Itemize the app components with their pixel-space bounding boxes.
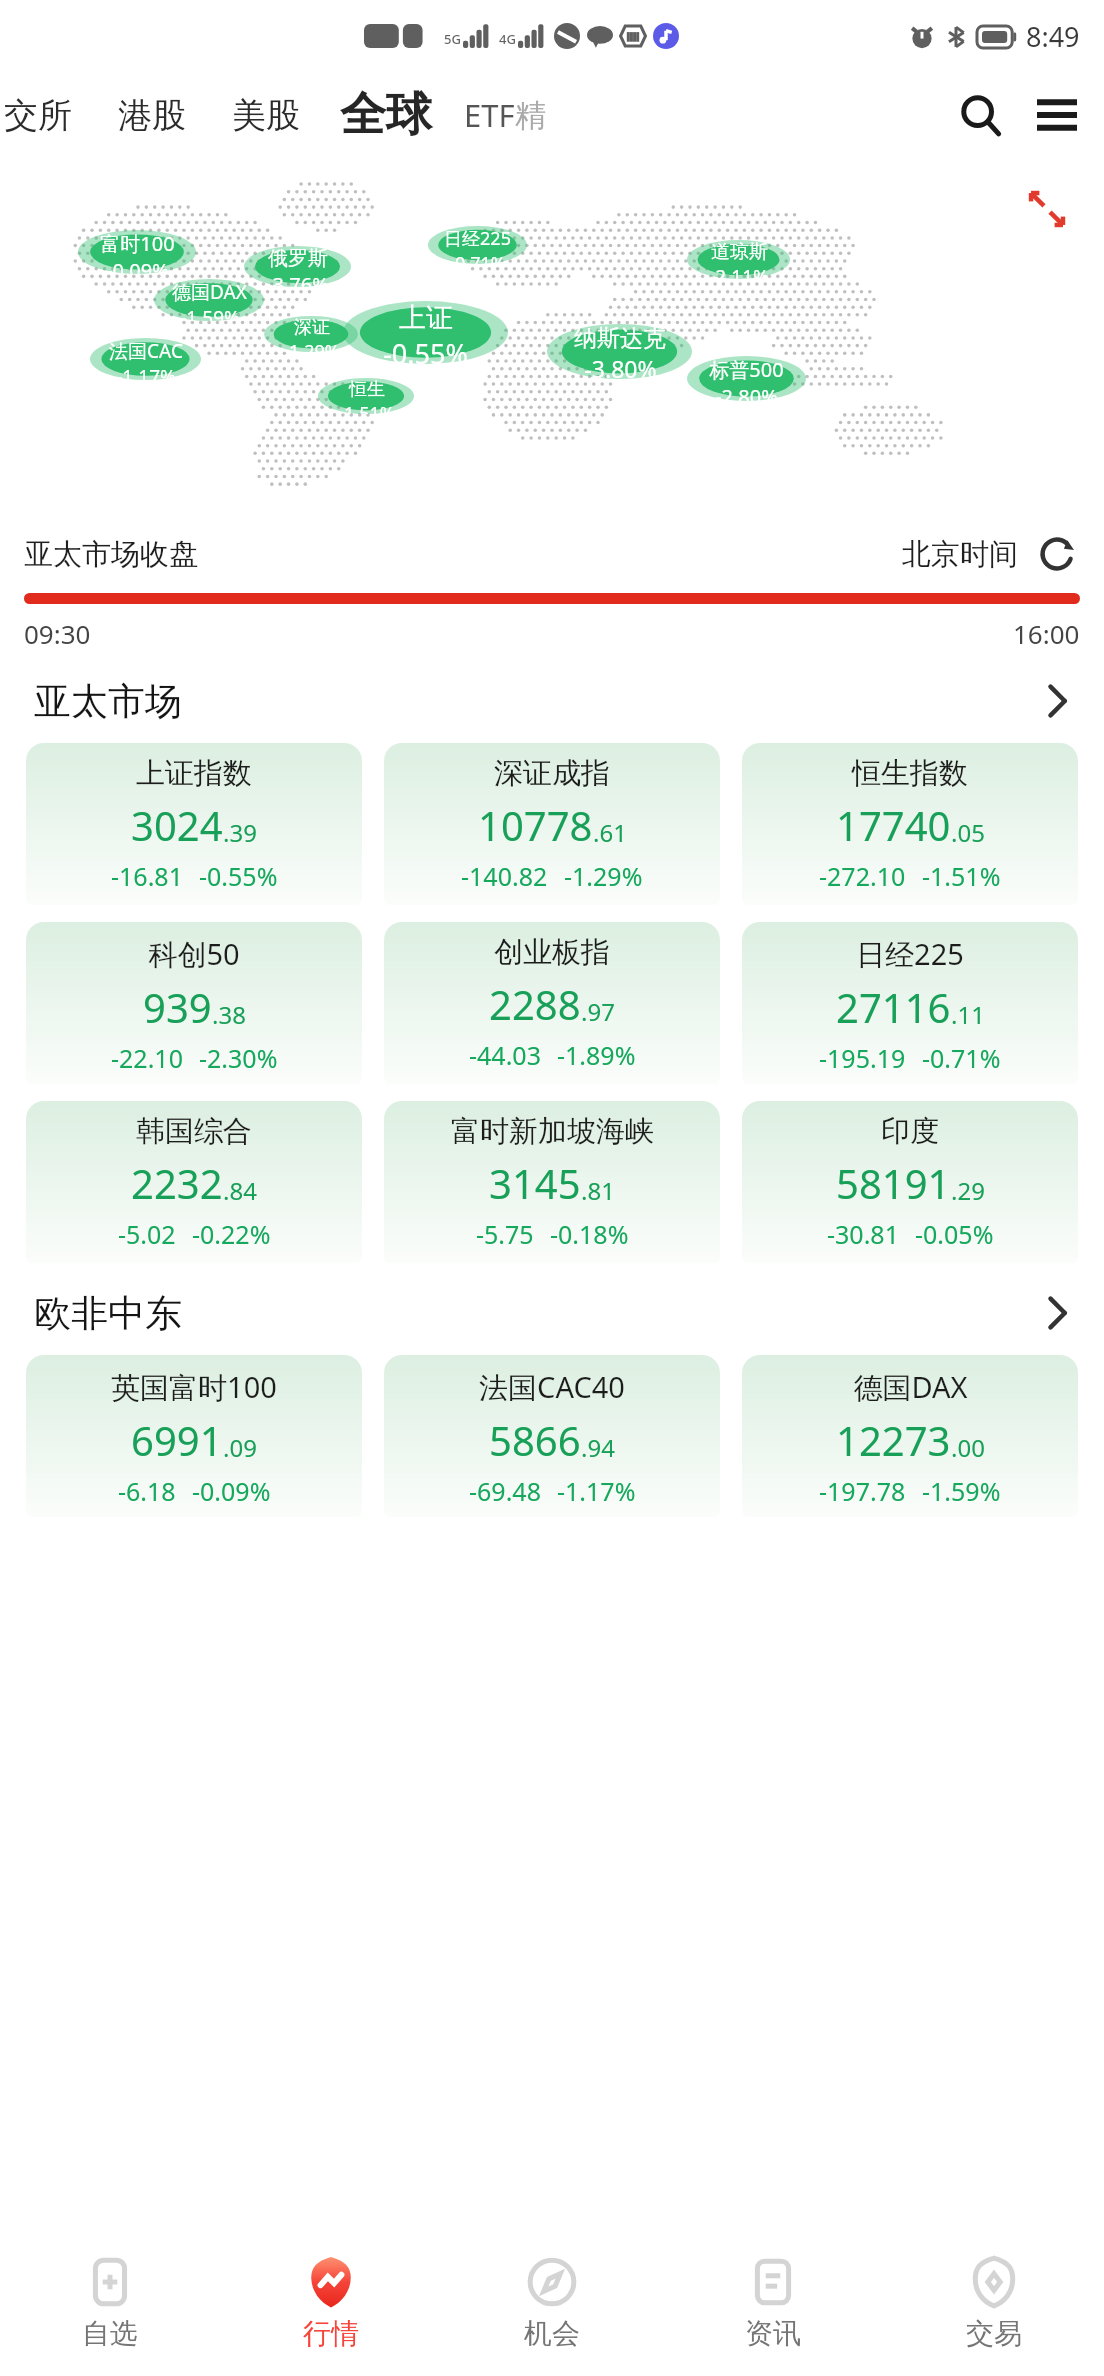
button[interactable]: 刷新 — [1034, 531, 1080, 577]
button[interactable]: 全屏 — [1018, 180, 1076, 238]
staticText: .97 — [581, 995, 615, 1028]
staticText: -69.48 — [469, 1474, 541, 1508]
button[interactable]: 科创50 — [26, 922, 362, 1084]
staticText: 印度 — [881, 1113, 939, 1150]
button[interactable]: 行情 — [220, 2230, 441, 2376]
button[interactable]: 俄罗斯 — [244, 246, 351, 287]
staticText: -3.76% — [266, 271, 329, 287]
staticText: -0.55% — [383, 335, 468, 364]
staticText: 2288 — [489, 977, 581, 1031]
button[interactable]: 富时新加坡海峡 — [384, 1101, 720, 1263]
button[interactable]: 全球 — [340, 86, 432, 144]
button[interactable]: 标普500 — [687, 356, 806, 401]
button[interactable]: 机会 — [441, 2230, 662, 2376]
staticText: -1.51% — [922, 859, 1001, 893]
button[interactable]: 亚太市场 — [0, 673, 1104, 729]
button[interactable]: 交所 — [4, 94, 72, 137]
staticText: 上证指数 — [136, 755, 252, 792]
staticText: -3.80% — [584, 353, 657, 379]
staticText: 道琼斯 — [711, 240, 768, 264]
staticText: -1.59% — [180, 305, 240, 321]
staticText: .11 — [951, 998, 985, 1031]
button[interactable]: 英国富时100 — [26, 1355, 362, 1517]
button[interactable]: 深证成指 — [384, 743, 720, 905]
button[interactable]: 创业板指 — [384, 922, 720, 1084]
staticText: 行情 — [303, 2316, 359, 2351]
staticText: 德国DAX — [853, 1367, 968, 1407]
staticText: -1.17% — [557, 1474, 636, 1508]
staticText: .38 — [212, 998, 246, 1031]
staticText: 美股 — [232, 94, 300, 137]
staticText: 16:00 — [1013, 616, 1080, 651]
staticText: -1.29% — [283, 339, 340, 352]
staticText: -1.51% — [338, 401, 395, 414]
button[interactable]: 日经225 — [742, 922, 1078, 1084]
staticText: 富时新加坡海峡 — [451, 1113, 654, 1150]
staticText: 12273 — [836, 1413, 951, 1467]
staticText: .61 — [593, 816, 627, 849]
staticText: 全球 — [340, 86, 432, 144]
button[interactable]: ETF — [464, 94, 546, 136]
button[interactable]: 法国CAC — [90, 338, 201, 380]
button[interactable]: 印度 — [742, 1101, 1078, 1263]
staticText: -44.03 — [469, 1038, 541, 1072]
staticText: 欧非中东 — [34, 1290, 182, 1337]
staticText: 科创50 — [148, 934, 240, 974]
button[interactable]: 上证指数 — [26, 743, 362, 905]
staticText: 939 — [143, 980, 212, 1034]
button[interactable]: 富时100 — [78, 230, 196, 274]
staticText: 5866 — [489, 1413, 581, 1467]
button[interactable]: 搜索 — [952, 86, 1010, 144]
staticText: 纳斯达克 — [574, 324, 666, 353]
button[interactable]: 自选 — [0, 2230, 220, 2376]
staticText: -0.05% — [915, 1217, 994, 1251]
staticText: .84 — [223, 1174, 257, 1207]
button[interactable]: 上证 — [343, 301, 508, 364]
staticText: 北京时间 — [902, 536, 1018, 573]
staticText: 英国富时100 — [111, 1367, 277, 1407]
button[interactable]: 德国DAX — [154, 279, 264, 321]
button[interactable]: 欧非中东 — [0, 1285, 1104, 1341]
staticText: -30.81 — [827, 1217, 899, 1251]
staticText: -5.02 — [118, 1217, 176, 1251]
staticText: -0.09% — [106, 257, 169, 274]
staticText: -0.18% — [550, 1217, 629, 1251]
staticText: 27116 — [836, 980, 951, 1034]
staticText: .00 — [951, 1431, 985, 1464]
button[interactable]: 纳斯达克 — [547, 324, 692, 379]
button[interactable]: 港股 — [118, 94, 186, 137]
staticText: -272.10 — [819, 859, 906, 893]
staticText: .81 — [581, 1174, 615, 1207]
button[interactable]: 道琼斯 — [687, 240, 790, 279]
button[interactable]: 恒生 — [318, 378, 414, 414]
staticText: 09:30 — [24, 616, 91, 651]
staticText: 2232 — [131, 1156, 223, 1210]
staticText: .29 — [951, 1174, 985, 1207]
staticText: 8:49 — [1026, 18, 1080, 55]
staticText: -0.71% — [922, 1041, 1001, 1075]
button[interactable]: 菜单 — [1028, 86, 1086, 144]
staticText: 深证成指 — [494, 755, 610, 792]
button[interactable]: 韩国综合 — [26, 1101, 362, 1263]
button[interactable]: 美股 — [232, 94, 300, 137]
staticText: 港股 — [118, 94, 186, 137]
staticText: 法国CAC — [109, 338, 183, 364]
staticText: -140.82 — [461, 859, 548, 893]
staticText: -1.17% — [116, 364, 176, 380]
staticText: -1.29% — [564, 859, 643, 893]
button[interactable]: 交易 — [883, 2230, 1104, 2376]
button[interactable]: 恒生指数 — [742, 743, 1078, 905]
staticText: -2.30% — [199, 1041, 278, 1075]
staticText: .09 — [223, 1431, 257, 1464]
button[interactable]: 资讯 — [662, 2230, 883, 2376]
button[interactable]: 日经225 — [428, 226, 527, 264]
staticText: 交易 — [966, 2316, 1022, 2351]
staticText: -0.09% — [192, 1474, 271, 1508]
button[interactable]: 深证 — [264, 316, 358, 352]
staticText: 标普500 — [709, 356, 784, 383]
staticText: 6991 — [131, 1413, 223, 1467]
button[interactable]: 法国CAC40 — [384, 1355, 720, 1517]
button[interactable]: 德国DAX — [742, 1355, 1078, 1517]
staticText: 58191 — [836, 1156, 951, 1210]
staticText: .05 — [951, 816, 985, 849]
